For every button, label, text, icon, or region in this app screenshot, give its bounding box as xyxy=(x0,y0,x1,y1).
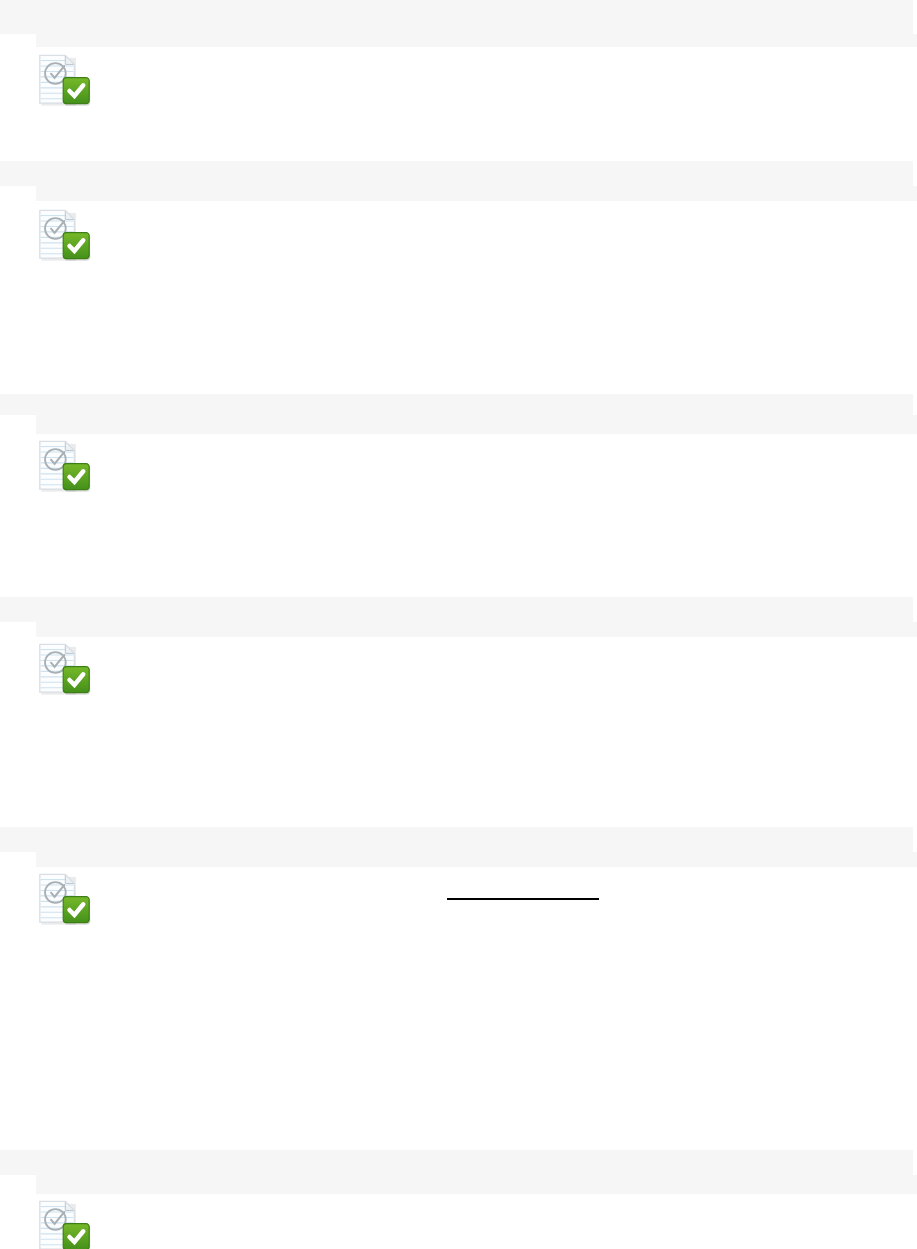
button[interactable]: Completed document xyxy=(38,1199,90,1249)
button[interactable]: Completed document xyxy=(38,642,90,694)
button[interactable]: Completed document xyxy=(38,53,90,105)
button[interactable]: Completed document xyxy=(38,439,90,491)
button[interactable]: Completed document xyxy=(38,208,90,260)
button[interactable]: Completed document xyxy=(38,872,90,924)
